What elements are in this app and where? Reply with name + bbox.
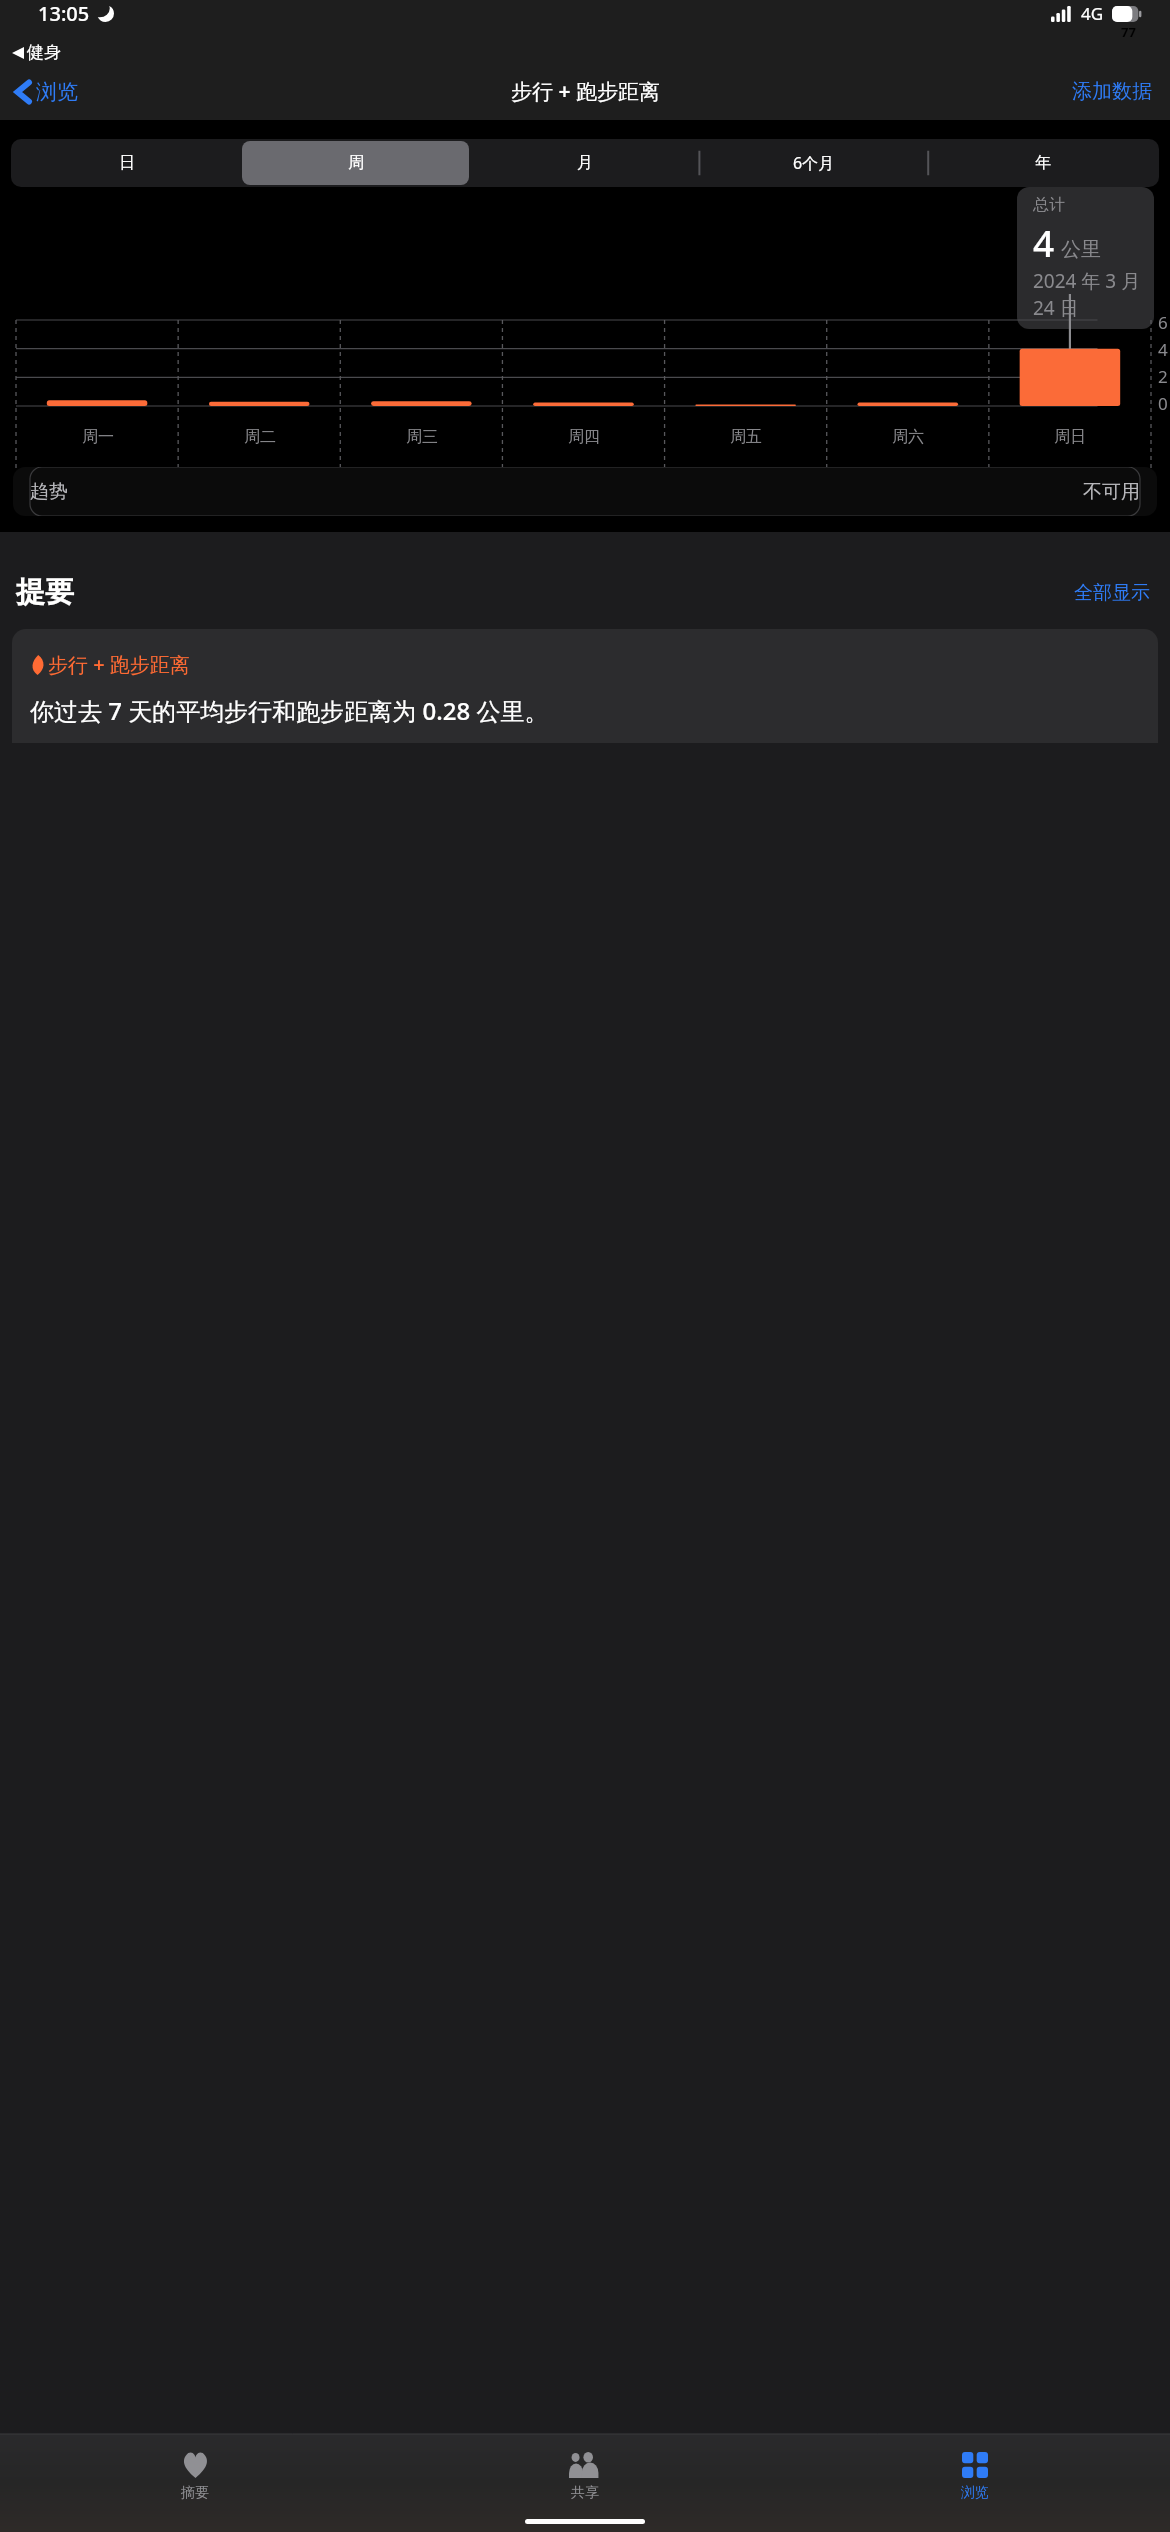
staticText: 提要 bbox=[16, 574, 74, 611]
staticText: 浏览 bbox=[961, 2484, 989, 2502]
staticText: 周 bbox=[348, 153, 364, 173]
button[interactable]: 月 bbox=[471, 141, 698, 185]
button[interactable]: 浏览 bbox=[780, 2444, 1170, 2532]
staticText: 13:05 bbox=[38, 0, 90, 27]
staticText: 健身 bbox=[27, 42, 61, 63]
button[interactable]: 添加数据 bbox=[1068, 75, 1156, 108]
staticText: 步行 + 跑步距离 bbox=[511, 77, 660, 106]
staticText: 6 bbox=[1158, 311, 1168, 334]
staticText: 4G bbox=[1081, 2, 1104, 25]
staticText: 2024 年 3 月 24 日 bbox=[1033, 268, 1154, 321]
other: 共享 bbox=[569, 2452, 601, 2478]
staticText: 2 bbox=[1158, 365, 1168, 388]
staticText: 步行 + 跑步距离 bbox=[48, 651, 190, 678]
staticText: 摘要 bbox=[181, 2484, 209, 2502]
other: 摘要 bbox=[181, 2452, 210, 2478]
staticText: 总计 bbox=[1033, 195, 1065, 215]
button[interactable]: 共享 bbox=[390, 2444, 780, 2532]
staticText: 不可用 bbox=[1083, 480, 1140, 504]
staticText: 0 bbox=[1158, 392, 1168, 415]
button[interactable]: 周 bbox=[242, 141, 469, 185]
button[interactable]: 总计 bbox=[1017, 187, 1154, 329]
staticText: 你过去 7 天的平均步行和跑步距离为 0.28 公里。 bbox=[30, 694, 549, 727]
button[interactable]: 摘要 bbox=[0, 2444, 390, 2532]
staticText: 浏览 bbox=[36, 79, 78, 105]
staticText: 月 bbox=[577, 153, 593, 173]
staticText: 周一 bbox=[82, 427, 114, 447]
button[interactable]: 全部显示 bbox=[1070, 577, 1154, 609]
button[interactable]: 浏览 bbox=[10, 73, 84, 111]
staticText: 共享 bbox=[571, 2484, 599, 2502]
staticText: 周四 bbox=[568, 427, 600, 447]
staticText: 周六 bbox=[892, 427, 924, 447]
staticText: 周三 bbox=[406, 427, 438, 447]
staticText: 周五 bbox=[730, 427, 762, 447]
staticText: 周日 bbox=[1054, 427, 1086, 447]
staticText: 年 bbox=[1035, 153, 1051, 173]
staticText: 4 bbox=[1158, 338, 1168, 361]
staticText: 77 bbox=[1121, 23, 1136, 41]
other: 浏览 bbox=[962, 2452, 988, 2478]
button[interactable]: 步行 + 跑步距离 bbox=[12, 629, 1158, 743]
staticText: 周二 bbox=[244, 427, 276, 447]
button[interactable]: 年 bbox=[929, 141, 1156, 185]
button[interactable]: 日 bbox=[14, 141, 240, 185]
staticText: 6个月 bbox=[793, 152, 835, 174]
staticText: 4 bbox=[1033, 217, 1055, 267]
button[interactable]: 趋势 bbox=[13, 467, 1157, 516]
staticText: 趋势 bbox=[30, 480, 68, 504]
button[interactable]: 6个月 bbox=[700, 141, 927, 185]
button[interactable]: 健身 bbox=[8, 42, 65, 63]
staticText: 日 bbox=[119, 153, 135, 173]
staticText: 公里 bbox=[1061, 237, 1101, 262]
